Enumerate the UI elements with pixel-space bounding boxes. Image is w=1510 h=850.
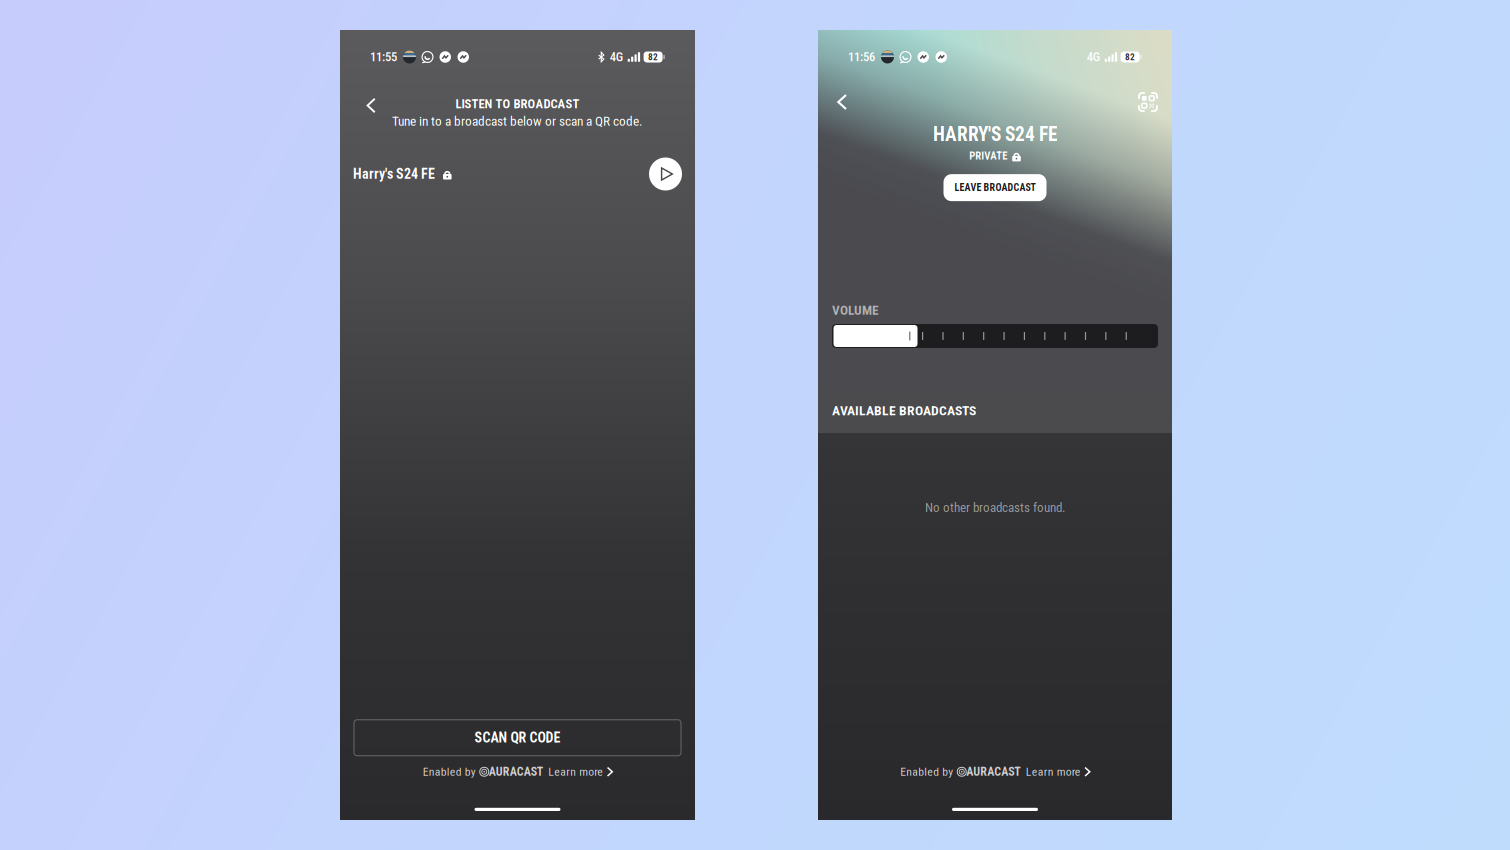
staticText: VOLUME <box>832 302 879 318</box>
staticText: HARRY'S S24 FE <box>933 123 1057 146</box>
staticText: AURACAST <box>489 765 544 779</box>
button[interactable]: Back <box>829 90 855 114</box>
button[interactable]: Back <box>358 93 384 117</box>
staticText: LISTEN TO BROADCAST <box>455 96 579 111</box>
staticText: Learn more <box>548 765 603 779</box>
staticText: 4G <box>1087 50 1100 64</box>
staticText: 11:55 <box>370 50 397 64</box>
button[interactable]: SCAN QR CODE <box>354 720 681 756</box>
button[interactable]: Harry's S24 FE <box>340 156 695 192</box>
staticText: Enabled by <box>900 765 953 779</box>
staticText: SCAN QR CODE <box>474 729 560 746</box>
staticText: Enabled by <box>423 765 476 779</box>
button[interactable]: LEAVE BROADCAST <box>943 174 1046 201</box>
staticText: No other broadcasts found. <box>925 500 1065 515</box>
staticText: LEAVE BROADCAST <box>954 182 1035 193</box>
staticText: Learn more <box>1026 765 1081 779</box>
staticText: Tune in to a broadcast below or scan a Q… <box>392 113 643 129</box>
staticText: 82 <box>648 51 658 62</box>
staticText: PRIVATE <box>969 150 1007 162</box>
staticText: AURACAST <box>966 765 1021 779</box>
button[interactable]: Enabled by <box>423 765 612 779</box>
button[interactable]: Enabled by <box>900 765 1090 779</box>
staticText: 11:56 <box>848 50 875 64</box>
button[interactable]: Scan QR code <box>1135 90 1161 114</box>
staticText: AVAILABLE BROADCASTS <box>832 402 976 418</box>
staticText: 82 <box>1125 51 1135 62</box>
staticText: 4G <box>610 50 623 64</box>
staticText: Harry's S24 FE <box>353 166 435 182</box>
